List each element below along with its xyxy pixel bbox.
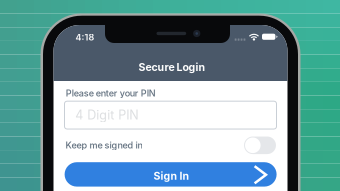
staticText: Please enter your PIN <box>66 88 156 99</box>
staticText: Secure Login <box>139 61 206 73</box>
staticText: 4 Digit PIN <box>75 107 138 122</box>
staticText: 4:18 <box>75 32 94 43</box>
staticText: Sign In <box>154 169 190 182</box>
button[interactable]: Sign In <box>65 162 277 187</box>
staticText: Keep me signed in <box>65 140 142 151</box>
button[interactable]: Keep me signed in <box>244 136 276 154</box>
